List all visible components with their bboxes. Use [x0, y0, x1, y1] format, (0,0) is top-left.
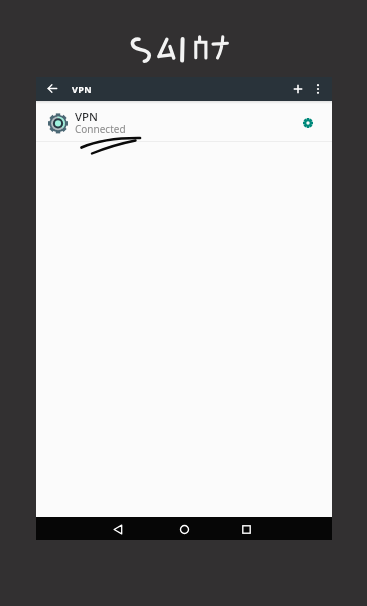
button[interactable]	[104, 518, 132, 541]
button[interactable]	[288, 79, 308, 99]
button[interactable]	[294, 109, 322, 137]
button[interactable]	[232, 518, 260, 541]
staticText: VPN	[72, 83, 92, 95]
button[interactable]	[36, 101, 332, 141]
staticText: Connected	[75, 122, 126, 136]
button[interactable]	[170, 518, 198, 541]
staticText: VPN	[75, 109, 99, 125]
button[interactable]	[308, 79, 328, 99]
button[interactable]	[40, 77, 64, 101]
